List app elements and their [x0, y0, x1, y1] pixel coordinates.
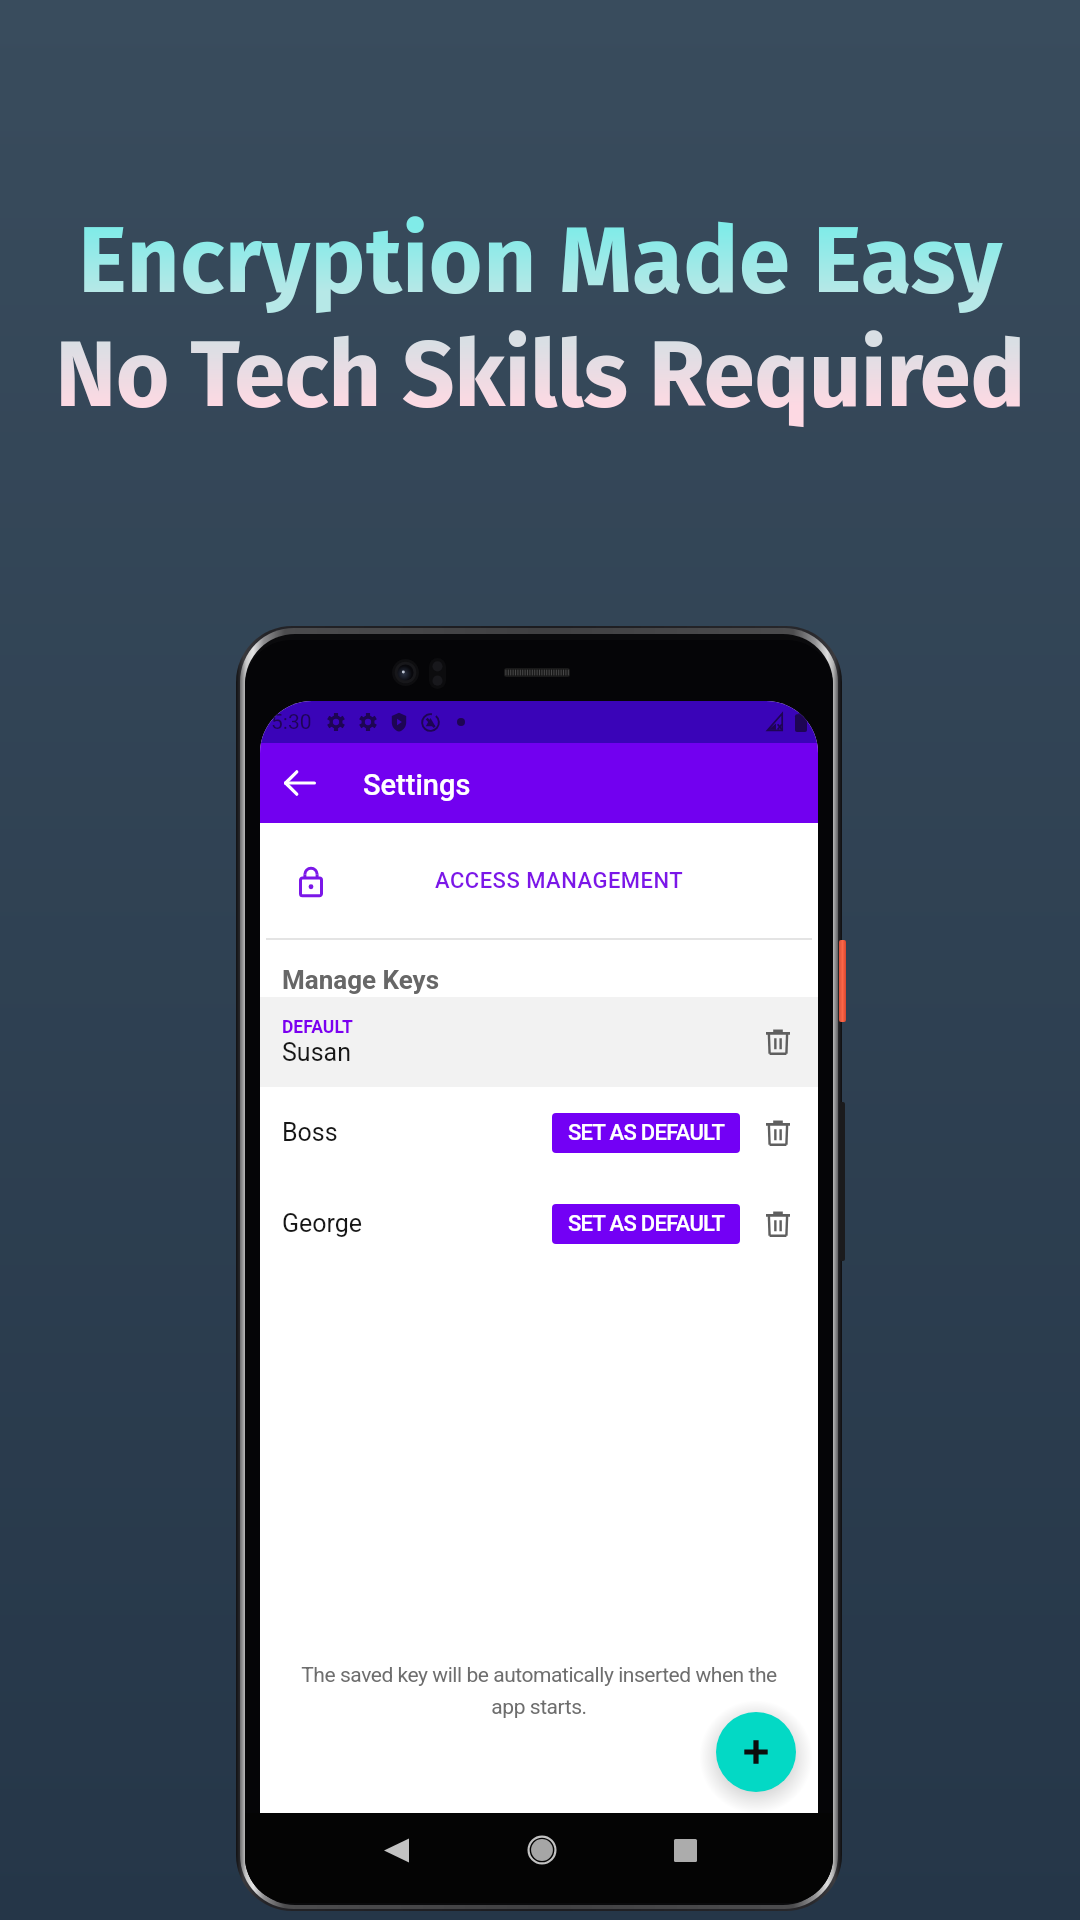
- button[interactable]: Delete: [756, 1202, 800, 1246]
- button[interactable]: Add key: [716, 1712, 796, 1792]
- staticText: 5:30: [271, 710, 312, 735]
- button[interactable]: Back: [272, 755, 328, 811]
- button[interactable]: SET AS DEFAULT: [552, 1204, 740, 1244]
- button[interactable]: Recent apps: [655, 1813, 715, 1887]
- button[interactable]: Delete: [756, 1111, 800, 1155]
- staticText: Boss: [282, 1118, 552, 1147]
- button[interactable]: Boss: [260, 1087, 818, 1178]
- staticText: SET AS DEFAULT: [568, 1211, 725, 1237]
- button[interactable]: Home: [512, 1813, 572, 1887]
- staticText: DEFAULT: [282, 1017, 353, 1038]
- staticText: SET AS DEFAULT: [568, 1120, 725, 1146]
- staticText: Settings: [363, 768, 471, 802]
- staticText: Manage Keys: [282, 965, 440, 995]
- staticText: The saved key will be automatically inse…: [288, 1663, 790, 1719]
- button[interactable]: Delete: [756, 1020, 800, 1064]
- button[interactable]: George: [260, 1178, 818, 1269]
- button[interactable]: SET AS DEFAULT: [552, 1113, 740, 1153]
- staticText: No Tech Skills Required: [55, 320, 1025, 430]
- button[interactable]: Back: [366, 1813, 426, 1887]
- staticText: Susan: [282, 1038, 351, 1067]
- staticText: ACCESS MANAGEMENT: [435, 868, 684, 894]
- button[interactable]: DEFAULT: [260, 997, 818, 1087]
- staticText: George: [282, 1209, 552, 1238]
- staticText: Encryption Made Easy: [78, 206, 1003, 316]
